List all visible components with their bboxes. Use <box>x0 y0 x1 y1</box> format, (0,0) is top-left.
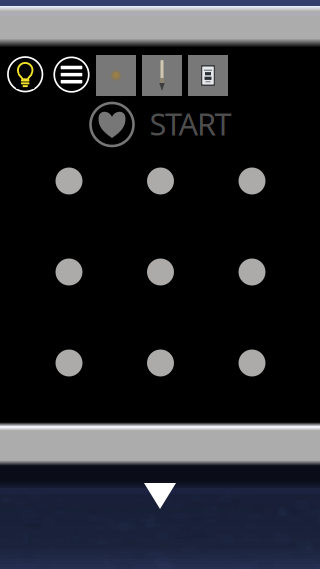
button[interactable]: Dot 4 <box>55 258 82 285</box>
button[interactable]: Dot 8 <box>147 349 174 376</box>
button[interactable]: Gold bead item <box>96 55 136 96</box>
button[interactable]: Dot 3 <box>238 167 265 194</box>
button[interactable]: Dot 2 <box>147 167 174 194</box>
button[interactable]: Menu <box>49 53 93 97</box>
button[interactable]: Dot 9 <box>238 349 265 376</box>
button[interactable]: Dot 5 <box>147 258 174 285</box>
button[interactable]: Scroll down <box>130 473 190 519</box>
button[interactable]: START <box>89 101 235 147</box>
button[interactable]: Paintbrush item <box>142 55 182 96</box>
button[interactable]: Note item <box>188 55 228 96</box>
staticText: START <box>149 103 231 144</box>
button[interactable]: Dot 6 <box>238 258 265 285</box>
button[interactable]: Dot 7 <box>55 349 82 376</box>
button[interactable]: Dot 1 <box>55 167 82 194</box>
button[interactable]: Hint <box>3 52 47 96</box>
